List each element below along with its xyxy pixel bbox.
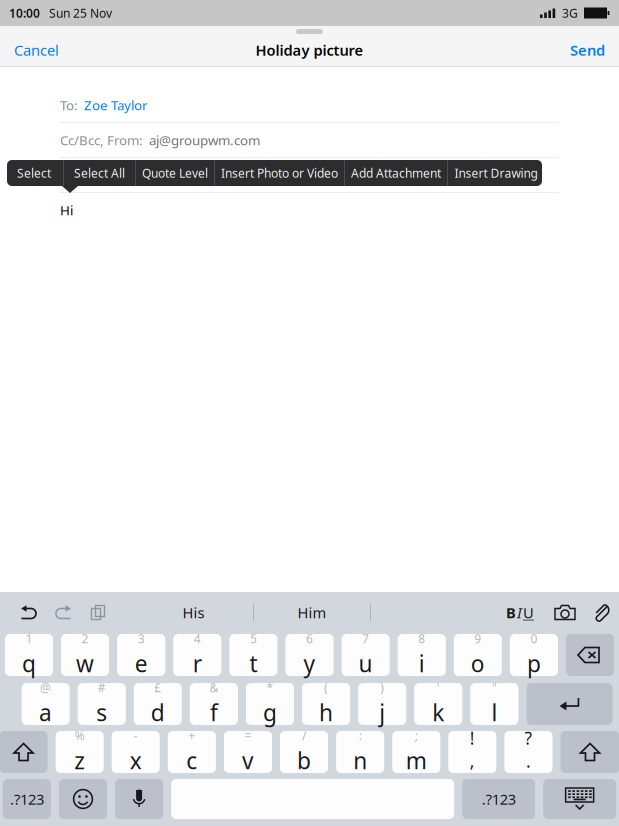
button[interactable]: @ <box>21 683 70 725</box>
staticText: 0 <box>530 630 537 646</box>
staticText: 3G <box>562 5 578 21</box>
staticText: .?123 <box>482 789 516 809</box>
button[interactable]: Paste <box>85 594 111 630</box>
staticText: / <box>302 727 306 743</box>
staticText: aj@groupwm.com <box>149 131 260 149</box>
button[interactable]: £ <box>134 683 182 725</box>
staticText: B <box>506 603 516 622</box>
button[interactable]: % <box>56 731 104 773</box>
button[interactable]: 5 <box>229 634 277 676</box>
staticText: 4 <box>194 630 201 646</box>
button[interactable]: Undo <box>16 594 42 630</box>
button[interactable]: + <box>168 731 216 773</box>
button[interactable]: ! <box>448 731 496 773</box>
staticText: u <box>359 648 373 678</box>
staticText: 1 <box>25 630 32 646</box>
button[interactable]: Insert Photo or Video <box>215 160 344 186</box>
button[interactable]: Insert Drawing <box>448 160 544 186</box>
staticText: .?123 <box>10 789 44 809</box>
staticText: Insert Drawing <box>454 165 537 181</box>
button[interactable]: * <box>246 683 294 725</box>
button[interactable]: 6 <box>285 634 333 676</box>
staticText: * <box>266 679 273 695</box>
button[interactable]: ? <box>504 731 552 773</box>
button[interactable]: ( <box>302 683 350 725</box>
staticText: # <box>98 679 106 695</box>
button[interactable]: 9 <box>454 634 502 676</box>
button[interactable]: ' <box>414 683 462 725</box>
button[interactable]: 4 <box>173 634 221 676</box>
button[interactable]: Numbers <box>3 779 51 819</box>
staticText: ? <box>524 726 532 749</box>
button[interactable]: His <box>134 594 253 630</box>
staticText: Sun 25 Nov <box>49 5 112 21</box>
button[interactable]: & <box>190 683 238 725</box>
staticText: Send <box>570 40 605 60</box>
button[interactable]: - <box>112 731 160 773</box>
button[interactable]: 3 <box>117 634 165 676</box>
button[interactable]: / <box>280 731 328 773</box>
button[interactable]: Return <box>526 683 612 725</box>
staticText: 6 <box>306 630 313 646</box>
staticText: d <box>151 697 165 727</box>
staticText: £ <box>154 679 161 695</box>
button[interactable]: Him <box>254 594 370 630</box>
button[interactable]: Emoji <box>59 779 107 819</box>
button[interactable]: 8 <box>398 634 446 676</box>
staticText: y <box>303 648 315 678</box>
staticText: & <box>209 679 218 695</box>
staticText: l <box>491 697 497 727</box>
button[interactable]: Send <box>556 33 619 67</box>
button[interactable]: Add Attachment <box>345 160 447 186</box>
button[interactable]: Redo <box>50 594 76 630</box>
button[interactable]: Shift <box>560 731 619 773</box>
staticText: I <box>517 603 522 622</box>
button[interactable]: 7 <box>341 634 390 676</box>
staticText: Quote Level <box>142 165 208 181</box>
button[interactable]: Quote Level <box>136 160 214 186</box>
button[interactable]: Hide keyboard <box>543 779 616 819</box>
staticText: Hi <box>60 201 73 219</box>
staticText: Cancel <box>14 40 59 60</box>
button[interactable]: = <box>224 731 272 773</box>
staticText: = <box>244 727 251 743</box>
staticText: U <box>523 603 534 622</box>
staticText: " <box>492 679 497 695</box>
staticText: Holiday picture <box>255 40 363 60</box>
button[interactable]: Shift <box>0 731 48 773</box>
button[interactable]: Cancel <box>0 33 73 67</box>
staticText: c <box>186 745 197 775</box>
button[interactable]: Text formatting <box>506 594 534 630</box>
staticText: % <box>75 727 85 743</box>
button[interactable]: Select <box>5 160 63 186</box>
button[interactable]: Camera <box>552 594 578 630</box>
staticText: : <box>359 727 362 743</box>
staticText: Cc/Bcc, From: <box>60 131 143 149</box>
staticText: b <box>297 745 311 775</box>
staticText: 10:00 <box>9 5 40 21</box>
staticText: t <box>249 648 257 678</box>
button[interactable]: Dictate <box>115 779 163 819</box>
staticText: 8 <box>418 630 425 646</box>
button[interactable]: Select All <box>64 160 135 186</box>
staticText: 9 <box>474 630 481 646</box>
staticText: i <box>419 648 425 678</box>
staticText: k <box>432 697 444 727</box>
staticText: Zoe Taylor <box>84 96 148 114</box>
button[interactable]: 2 <box>61 634 109 676</box>
staticText: o <box>471 648 485 678</box>
button[interactable]: Delete <box>566 634 614 676</box>
staticText: h <box>319 697 333 727</box>
button[interactable]: 0 <box>510 634 558 676</box>
button[interactable]: ) <box>358 683 406 725</box>
button[interactable]: Numbers <box>462 779 535 819</box>
staticText: a <box>39 697 52 727</box>
button[interactable]: # <box>78 683 126 725</box>
button[interactable]: Attach file <box>590 594 612 630</box>
button[interactable]: 1 <box>5 634 53 676</box>
staticText: g <box>263 697 277 727</box>
button[interactable]: : <box>336 731 384 773</box>
button[interactable]: " <box>470 683 518 725</box>
button[interactable]: ; <box>392 731 440 773</box>
